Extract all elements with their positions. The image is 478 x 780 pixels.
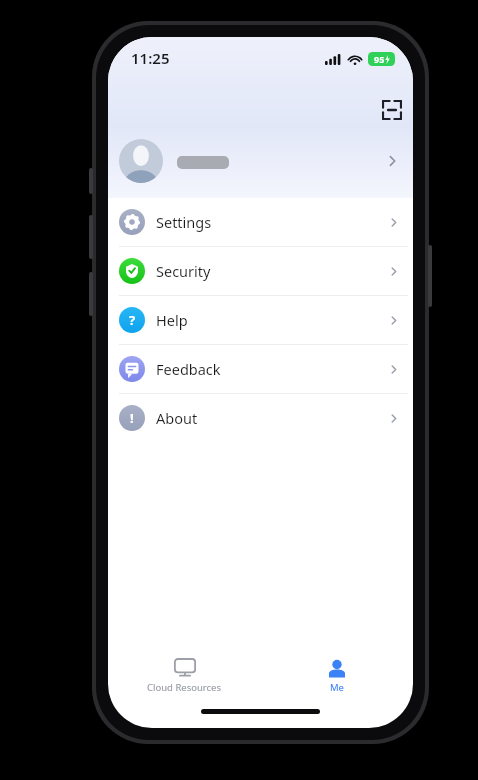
button[interactable]: Settings: [108, 198, 413, 246]
button[interactable]: Scan: [376, 94, 408, 126]
button[interactable]: Feedback: [108, 345, 413, 393]
staticText: Feedback: [156, 359, 221, 379]
button[interactable]: ?: [108, 296, 413, 344]
button[interactable]: Cloud Resources: [108, 650, 260, 702]
staticText: Help: [156, 310, 188, 330]
button[interactable]: !: [108, 394, 413, 442]
staticText: Me: [330, 681, 344, 694]
staticText: Cloud Resources: [147, 681, 222, 694]
staticText: ?: [129, 311, 136, 329]
staticText: 95: [374, 53, 385, 65]
staticText: About: [156, 408, 198, 428]
staticText: Settings: [156, 212, 212, 232]
button[interactable]: [108, 132, 413, 190]
button[interactable]: Security: [108, 247, 413, 295]
button[interactable]: Me: [260, 650, 413, 702]
staticText: Security: [156, 261, 211, 281]
staticText: 11:25: [131, 48, 170, 68]
staticText: !: [130, 409, 134, 427]
